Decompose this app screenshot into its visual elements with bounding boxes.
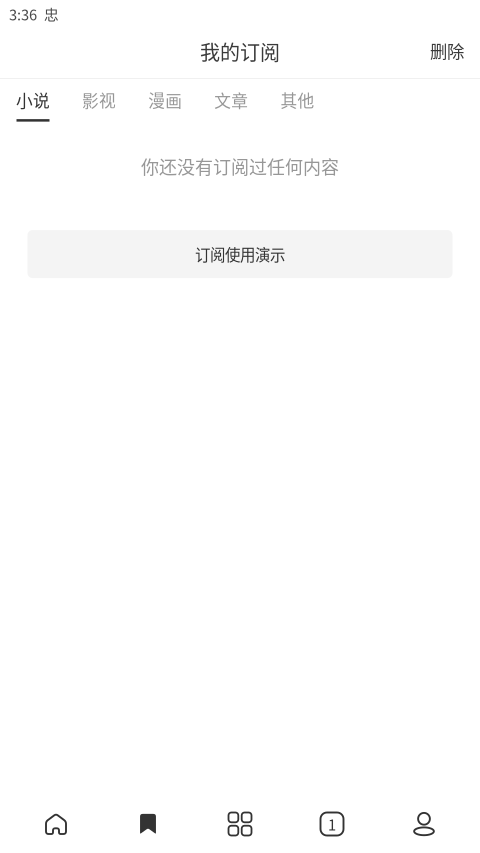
staticText: 订阅使用演示 bbox=[195, 243, 285, 265]
staticText: 漫画 bbox=[148, 88, 182, 112]
staticText: 文章 bbox=[214, 88, 248, 112]
button[interactable]: 其他 bbox=[280, 79, 314, 122]
staticText: 3:36 bbox=[9, 3, 37, 25]
button[interactable]: 小说 bbox=[16, 79, 50, 122]
staticText: 删除 bbox=[430, 38, 464, 63]
staticText: 忠 bbox=[44, 3, 59, 25]
staticText: 1 bbox=[328, 813, 336, 835]
button[interactable]: Profile bbox=[378, 802, 470, 846]
button[interactable]: 漫画 bbox=[148, 79, 182, 122]
button[interactable]: 影视 bbox=[82, 79, 116, 122]
staticText: 影视 bbox=[82, 88, 116, 112]
staticText: 小说 bbox=[16, 88, 50, 112]
button[interactable]: Reading list bbox=[286, 802, 378, 846]
button[interactable]: 删除 bbox=[430, 28, 480, 78]
button[interactable]: Bookmarks bbox=[102, 802, 194, 846]
button[interactable]: 订阅使用演示 bbox=[27, 230, 452, 278]
staticText: 你还没有订阅过任何内容 bbox=[141, 153, 339, 179]
button[interactable]: 文章 bbox=[214, 79, 248, 122]
staticText: 我的订阅 bbox=[200, 37, 280, 66]
button[interactable]: Categories bbox=[194, 802, 286, 846]
staticText: 其他 bbox=[280, 88, 314, 112]
button[interactable]: Home bbox=[10, 802, 102, 846]
